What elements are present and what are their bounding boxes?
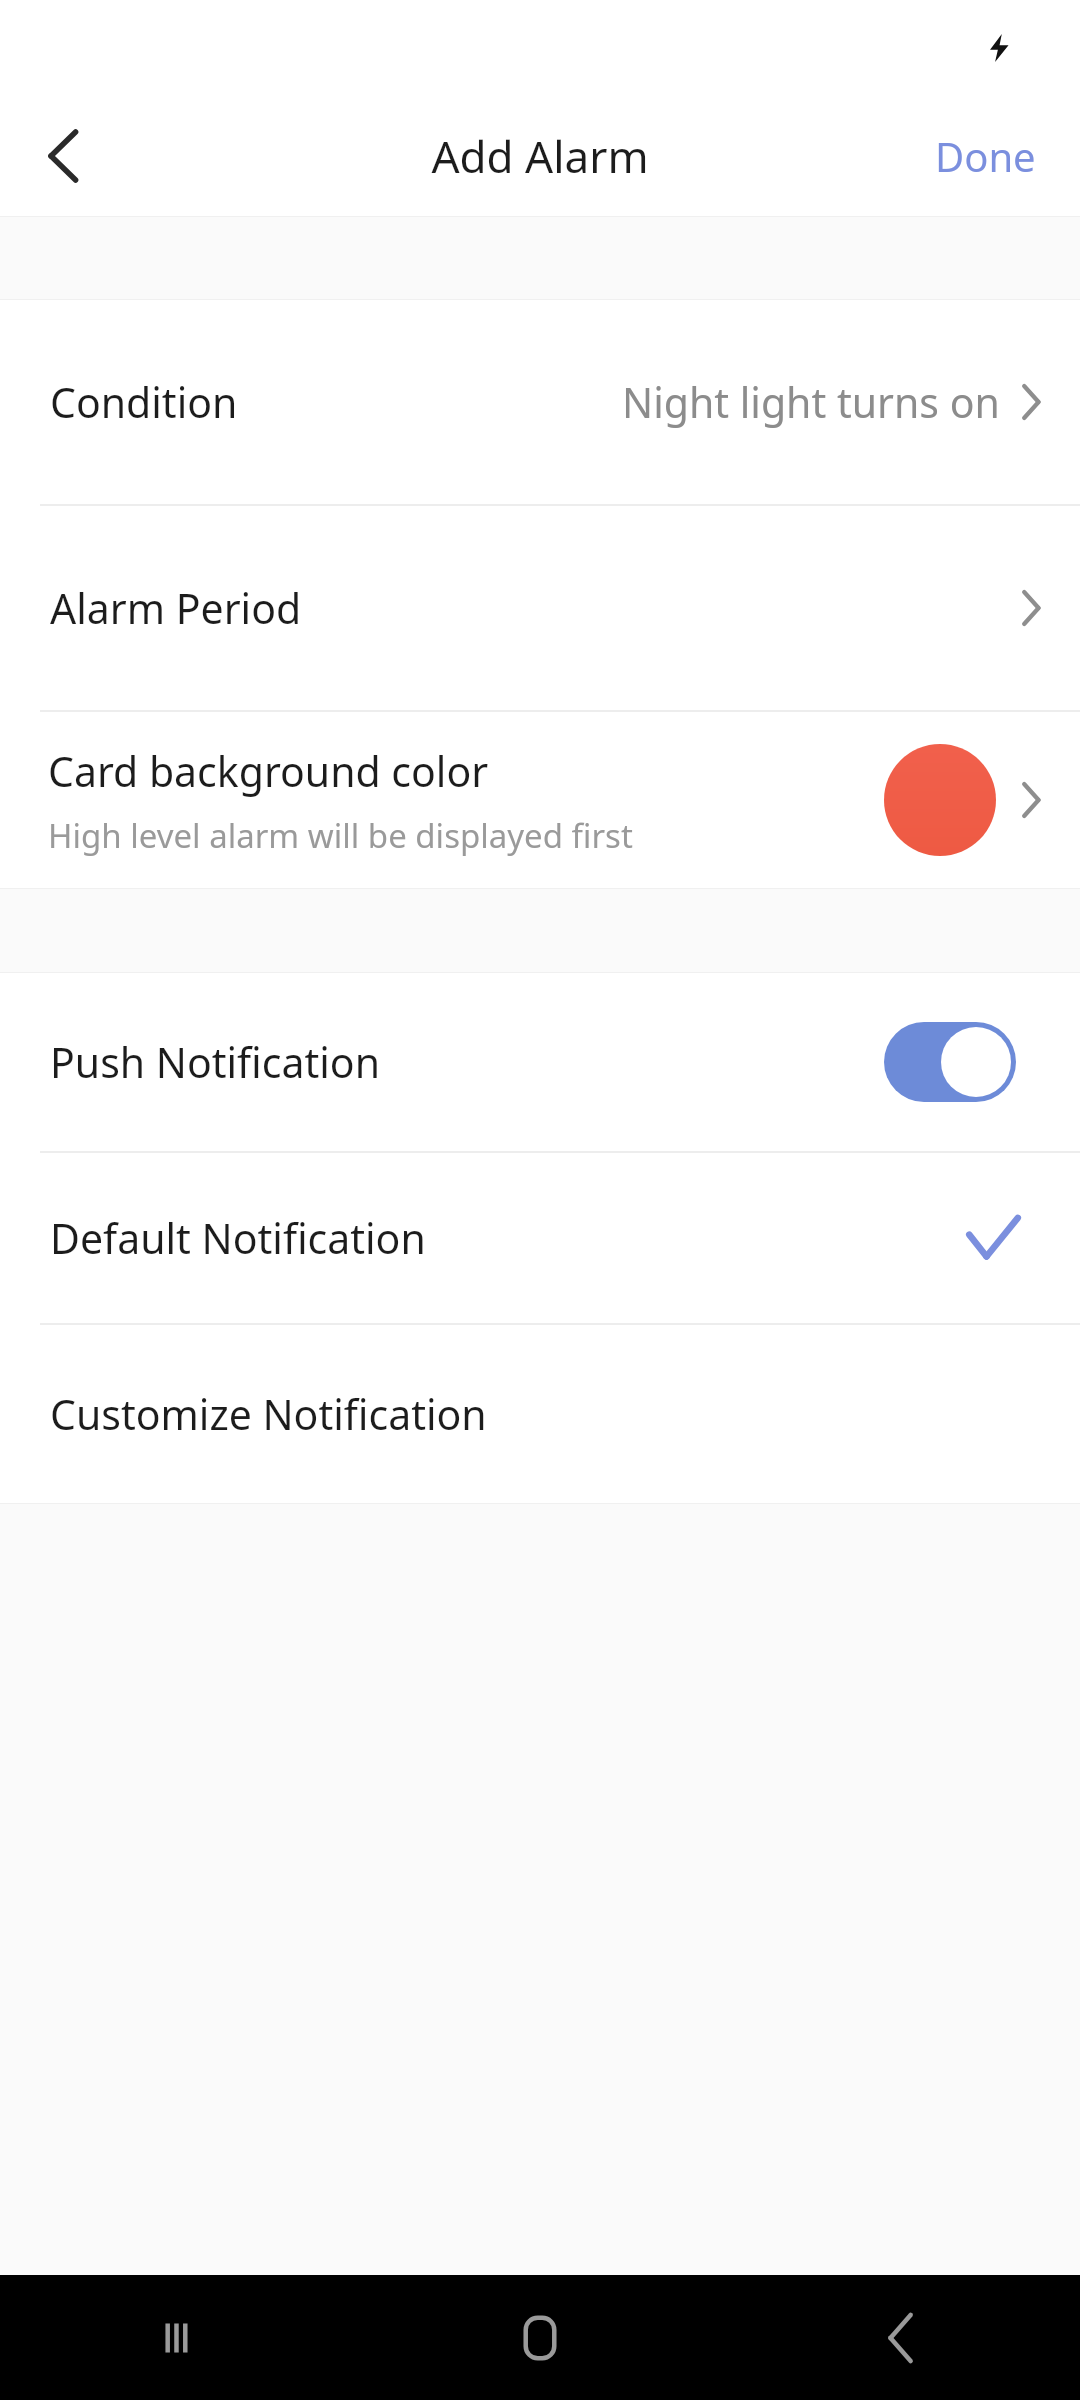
button[interactable]: Default Notification: [0, 1153, 1080, 1323]
button[interactable]: Home: [360, 2275, 720, 2400]
staticText: Add Alarm: [431, 126, 649, 186]
button[interactable]: Customize Notification: [0, 1325, 1080, 1503]
button[interactable]: Back: [8, 101, 118, 211]
staticText: Card background color: [48, 743, 489, 799]
staticText: Alarm Period: [50, 580, 302, 636]
button[interactable]: Condition: [0, 300, 1080, 504]
button[interactable]: Alarm Period: [0, 506, 1080, 710]
button[interactable]: Recent apps: [0, 2275, 360, 2400]
button[interactable]: Done: [891, 95, 1080, 216]
staticText: Default Notification: [50, 1210, 426, 1266]
staticText: Condition: [50, 374, 238, 430]
staticText: Night light turns on: [622, 374, 1000, 430]
button[interactable]: Push Notification: [0, 973, 1080, 1151]
button[interactable]: Card background color: [0, 712, 1080, 888]
staticText: High level alarm will be displayed first: [48, 813, 633, 858]
staticText: Push Notification: [50, 1034, 381, 1090]
staticText: Done: [935, 129, 1036, 183]
staticText: Customize Notification: [50, 1386, 487, 1442]
button[interactable]: Back: [720, 2275, 1080, 2400]
other: Selected: [966, 1217, 1020, 1259]
